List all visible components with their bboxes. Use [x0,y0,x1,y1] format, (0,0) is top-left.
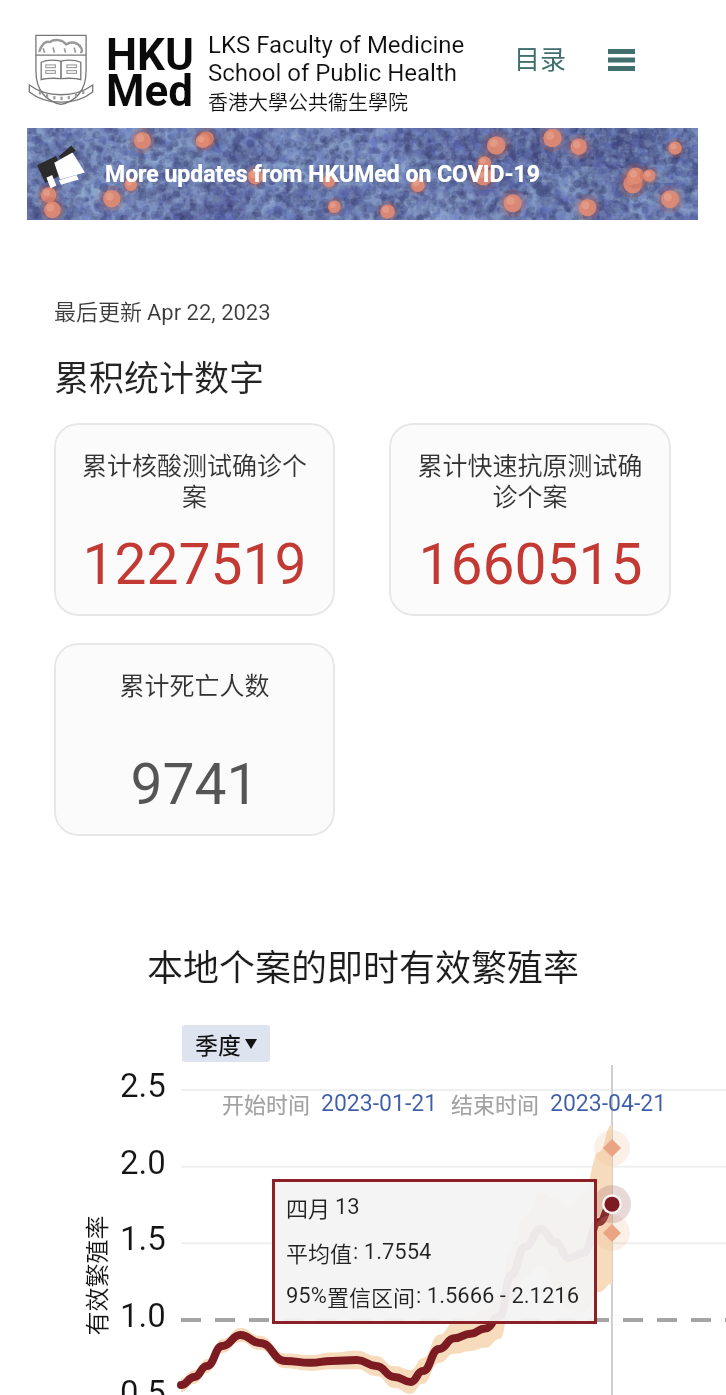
staticText: 2.0 [120,1143,166,1182]
staticText: 开始时间 [222,1087,311,1119]
button[interactable]: 目录 [506,31,575,85]
staticText: 1660515 [418,531,643,598]
button[interactable]: 累计核酸测试确诊个案 [54,423,335,616]
staticText: Med [106,65,194,117]
staticText: 0.5 [120,1373,166,1395]
staticText: : 1.7554 [353,1239,432,1265]
staticText: 平均值 [286,1236,353,1268]
button[interactable]: 累计快速抗原测试确诊个案 [389,423,671,616]
staticText: 季度 [195,1027,241,1060]
button[interactable]: More updates from HKUMed on COVID-19 [27,128,698,220]
staticText: 累计核酸测试确诊个案 [74,446,315,513]
button[interactable]: Menu [594,38,648,82]
staticText: : 1.5666 - 2.1216 [416,1283,580,1309]
staticText: 结束时间 [451,1087,540,1119]
staticText: More updates from HKUMed on COVID-19 [105,161,540,188]
staticText: 累计快速抗原测试确诊个案 [409,446,651,513]
staticText: 2023-04-21 [550,1090,667,1117]
staticText: 置信区间 [327,1280,416,1312]
staticText: 目录 [514,39,567,77]
staticText: 13 [335,1194,360,1220]
staticText: HKU [106,29,195,81]
staticText: 1227519 [82,531,307,598]
staticText: 1.0 [120,1296,166,1335]
staticText: LKS Faculty of Medicine [208,31,465,59]
staticText: 累计死亡人数 [119,666,270,702]
staticText: 最后更新 [54,294,147,326]
staticText: 有效繁殖率 [77,1215,112,1335]
button[interactable]: 累计死亡人数 [54,643,335,836]
staticText: 1.5 [120,1219,166,1258]
button[interactable]: 季度 [182,1025,270,1062]
staticText: 9741 [130,751,259,818]
staticText: Apr 22, 2023 [147,300,271,326]
staticText: 香港大學公共衞生學院 [208,87,408,116]
staticText: 本地个案的即时有效繁殖率 [0,939,726,991]
staticText: 累积统计数字 [54,350,265,401]
staticText: 2023-01-21 [321,1090,438,1117]
staticText: School of Public Health [208,59,458,87]
staticText: 95% [286,1283,327,1309]
staticText: 2.5 [120,1066,166,1105]
staticText: 四月 [286,1191,335,1223]
